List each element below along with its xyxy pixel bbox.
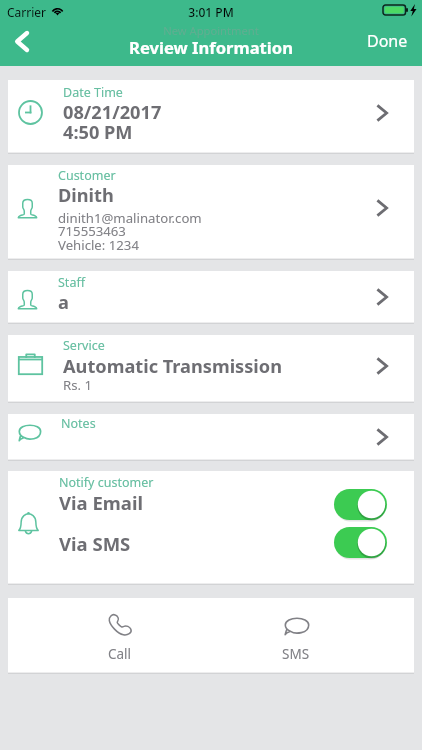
staticText: 08/21/2017 (63, 100, 162, 125)
button[interactable]: Staff row (8, 271, 414, 324)
staticText: Customer (58, 167, 116, 184)
staticText: Dinith (58, 183, 114, 208)
button[interactable]: Call (70, 598, 170, 674)
button[interactable]: Service row (8, 335, 414, 403)
button[interactable]: SMS (246, 598, 346, 674)
button[interactable]: Back (0, 20, 44, 66)
button[interactable]: Via Email toggle (8, 488, 414, 528)
staticText: Vehicle: 1234 (58, 236, 139, 254)
staticText: Call (108, 645, 132, 663)
staticText: dinith1@malinator.com (58, 209, 202, 227)
staticText: Service (63, 337, 105, 354)
staticText: Staff (58, 274, 85, 291)
staticText: Automatic Transmission (63, 354, 282, 379)
staticText: Rs. 1 (63, 376, 93, 394)
staticText: 3:01 PM (0, 4, 422, 20)
staticText: Notify customer (59, 474, 154, 491)
staticText: Done (367, 30, 408, 52)
button[interactable]: Via SMS toggle (8, 527, 414, 573)
button[interactable]: Date Time row (8, 80, 414, 154)
staticText: Date Time (63, 84, 123, 101)
button[interactable]: Notes row (8, 414, 414, 461)
staticText: SMS (282, 645, 310, 663)
staticText: Via SMS (59, 531, 131, 556)
staticText: New Appointment (0, 23, 422, 38)
button[interactable]: Done (356, 25, 416, 61)
staticText: Review Information (0, 36, 422, 59)
staticText: a (58, 290, 69, 315)
staticText: 4:50 PM (63, 120, 133, 145)
staticText: 715553463 (58, 222, 126, 240)
staticText: Notes (61, 415, 96, 432)
button[interactable]: Customer row (8, 165, 414, 260)
staticText: Via Email (59, 490, 143, 515)
staticText: Carrier (7, 4, 47, 20)
